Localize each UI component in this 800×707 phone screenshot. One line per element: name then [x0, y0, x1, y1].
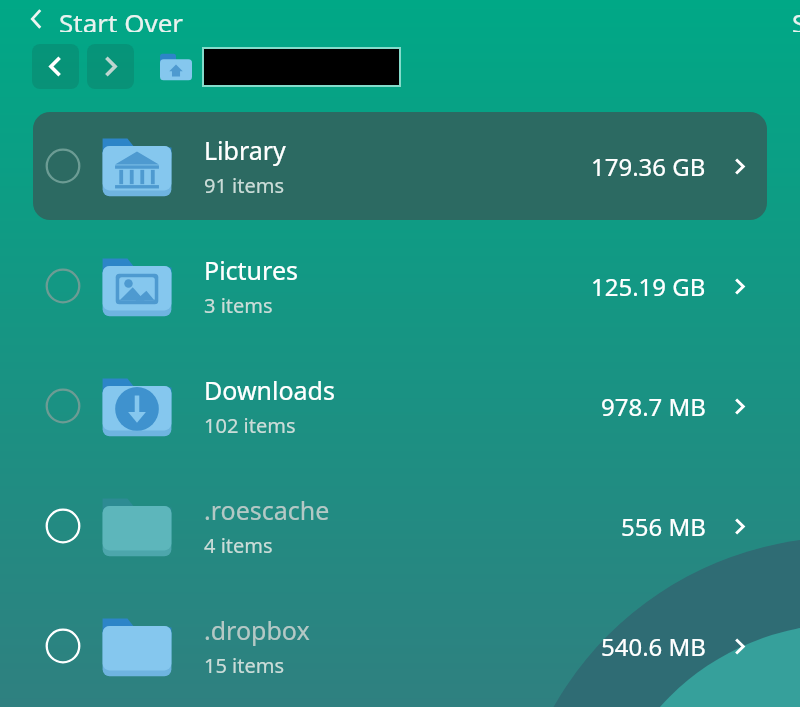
other: Open Pictures [729, 276, 750, 297]
button[interactable]: Select .roescache [33, 472, 767, 580]
button[interactable]: Back [0, 5, 196, 32]
staticText: Downloads [204, 373, 335, 407]
button[interactable]: Select .dropbox [33, 592, 767, 700]
button[interactable]: Select Pictures [33, 232, 767, 340]
button[interactable]: Select Downloads [33, 352, 767, 460]
staticText: 179.36 GB [591, 150, 706, 183]
button[interactable]: Forward [87, 44, 134, 89]
staticText: 556 MB [621, 510, 706, 543]
staticText: 125.19 GB [591, 270, 706, 303]
staticText: 91 items [204, 172, 285, 199]
staticText: .roescache [204, 493, 330, 527]
staticText: Start Over [59, 5, 184, 32]
staticText: 102 items [204, 412, 296, 439]
other: Open .dropbox [729, 636, 750, 657]
other: Open .roescache [729, 516, 750, 537]
other: Open Library [729, 156, 750, 177]
staticText: 978.7 MB [601, 390, 706, 423]
other: Select .roescache [41, 504, 85, 548]
other: Back [26, 8, 47, 29]
staticText: .dropbox [204, 613, 310, 647]
other: Select Pictures [41, 264, 85, 308]
other: Open Downloads [729, 396, 750, 417]
staticText: 4 items [204, 532, 273, 559]
staticText: 540.6 MB [601, 630, 706, 663]
button[interactable]: Select Library [33, 112, 767, 220]
other: Select Downloads [41, 384, 85, 428]
other: Home folder [160, 52, 192, 82]
staticText: 15 items [204, 652, 285, 679]
staticText: S [792, 5, 800, 32]
button[interactable]: Back [32, 44, 79, 89]
other: Select .dropbox [41, 624, 85, 668]
staticText: Library [204, 133, 286, 167]
staticText: 3 items [204, 292, 273, 319]
other: Select Library [41, 144, 85, 188]
staticText: Pictures [204, 253, 298, 287]
